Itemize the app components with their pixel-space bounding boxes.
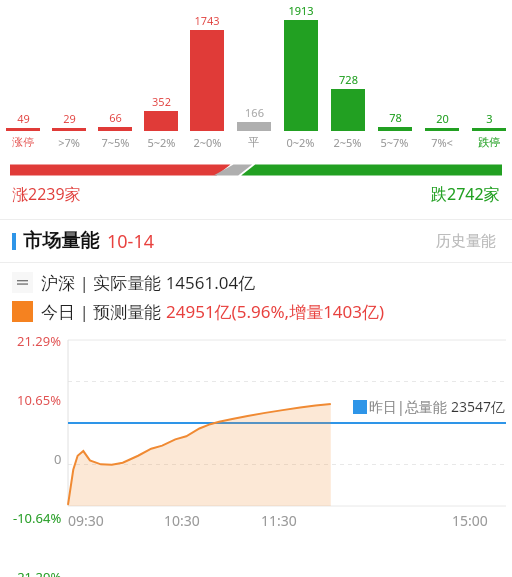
other: 实际量能 <box>12 272 33 293</box>
staticText: 涨2239家 <box>12 183 81 205</box>
staticText: -21.29% <box>13 568 62 577</box>
staticText: 昨日|总量能 <box>369 397 451 416</box>
staticText: 2~5% <box>333 135 362 150</box>
staticText: 2~0% <box>193 135 222 150</box>
staticText: 29 <box>63 111 76 126</box>
staticText: 10:30 <box>164 511 200 530</box>
staticText: 20 <box>436 111 449 126</box>
staticText: 23547亿 <box>451 397 506 416</box>
staticText: 1913 <box>288 3 314 18</box>
staticText: 66 <box>109 110 122 125</box>
staticText: 平 <box>248 135 259 149</box>
staticText: 市场量能 <box>23 229 99 253</box>
staticText: 沪深 | 实际量能 14561.04亿 <box>41 271 256 294</box>
staticText: 3 <box>486 111 493 126</box>
staticText: 49 <box>17 111 30 126</box>
staticText: 跌停 <box>478 135 500 149</box>
staticText: 涨停 <box>12 135 34 149</box>
staticText: 15:00 <box>452 511 488 530</box>
staticText: 7~5% <box>101 135 130 150</box>
staticText: 历史量能 <box>436 232 496 251</box>
staticText: 728 <box>339 72 358 87</box>
staticText: 11:30 <box>261 511 297 530</box>
staticText: 352 <box>152 94 171 109</box>
staticText: 21.29% <box>17 332 62 350</box>
staticText: 166 <box>245 105 264 120</box>
staticText: 跌2742家 <box>431 183 500 205</box>
staticText: 1743 <box>194 13 220 28</box>
staticText: 今日 | 预测量能 <box>41 300 166 323</box>
staticText: 5~2% <box>147 135 176 150</box>
staticText: 0 <box>54 450 62 468</box>
staticText: -10.64% <box>13 509 62 527</box>
staticText: 09:30 <box>68 511 104 530</box>
staticText: 0~2% <box>286 135 315 150</box>
button[interactable]: 历史量能 <box>432 228 500 255</box>
staticText: 24951亿(5.96%,增量1403亿) <box>166 300 385 323</box>
staticText: 10.65% <box>17 391 62 409</box>
staticText: 78 <box>389 110 402 125</box>
staticText: 7%< <box>431 135 453 150</box>
staticText: 10-14 <box>107 229 154 254</box>
staticText: 5~7% <box>380 135 409 150</box>
staticText: >7% <box>58 135 80 150</box>
